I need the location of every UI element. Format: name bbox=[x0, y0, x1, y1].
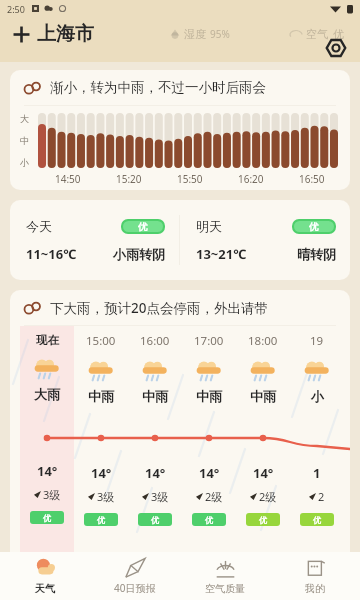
staticText: 15:00 bbox=[86, 333, 116, 349]
button[interactable]: 15:00 bbox=[74, 326, 128, 600]
staticText: 15:50 bbox=[177, 172, 203, 186]
staticText: 14° bbox=[145, 464, 166, 482]
staticText: 40日预报 bbox=[114, 581, 156, 595]
staticText: 优 bbox=[333, 27, 344, 41]
staticText: 优 bbox=[97, 515, 105, 525]
staticText: 优 bbox=[138, 221, 148, 232]
staticText: 16:00 bbox=[140, 333, 170, 349]
button[interactable]: 19 bbox=[290, 326, 344, 600]
staticText: 优 bbox=[259, 515, 267, 525]
staticText: 16:20 bbox=[238, 172, 264, 186]
staticText: 95% bbox=[210, 27, 230, 41]
button[interactable]: 40日预报 bbox=[90, 552, 180, 600]
button[interactable]: 18:00 bbox=[236, 326, 290, 600]
staticText: 15:20 bbox=[116, 172, 142, 186]
staticText: 14° bbox=[199, 464, 220, 482]
staticText: 优 bbox=[313, 515, 321, 525]
staticText: 小 bbox=[311, 388, 324, 404]
staticText: 优 bbox=[205, 515, 213, 525]
staticText: 17:00 bbox=[194, 333, 224, 349]
staticText: 中雨 bbox=[88, 388, 114, 404]
staticText: 明天 bbox=[196, 218, 222, 234]
staticText: 14° bbox=[253, 464, 274, 482]
staticText: 今天 bbox=[26, 218, 52, 234]
staticText: 小 bbox=[20, 157, 29, 168]
staticText: 3级 bbox=[151, 489, 169, 504]
staticText: 中雨 bbox=[142, 388, 168, 404]
staticText: 中雨 bbox=[196, 388, 222, 404]
button[interactable]: 17:00 bbox=[182, 326, 236, 600]
button[interactable]: 16:00 bbox=[128, 326, 182, 600]
button[interactable]: 空气质量 bbox=[180, 552, 270, 600]
staticText: 中雨 bbox=[250, 388, 276, 404]
staticText: 11~16℃ bbox=[26, 245, 77, 263]
staticText: 空气质量 bbox=[205, 582, 245, 595]
staticText: 优 bbox=[309, 221, 319, 232]
staticText: 中 bbox=[20, 135, 29, 146]
staticText: 13~21℃ bbox=[196, 245, 247, 263]
staticText: 晴转阴 bbox=[297, 246, 336, 262]
staticText: 18:00 bbox=[248, 333, 278, 349]
staticText: 湿度 bbox=[184, 27, 206, 41]
button[interactable]: 我的 bbox=[270, 552, 360, 600]
button[interactable]: 现在 bbox=[20, 326, 74, 600]
staticText: 14° bbox=[91, 464, 112, 482]
staticText: 大雨 bbox=[34, 386, 60, 402]
staticText: 大 bbox=[20, 113, 29, 124]
staticText: 下大雨，预计20点会停雨，外出请带 bbox=[50, 299, 268, 317]
staticText: 小雨转阴 bbox=[113, 246, 165, 262]
button[interactable]: 天气 bbox=[0, 552, 90, 600]
staticText: 1 bbox=[313, 464, 321, 482]
button[interactable]: 渐小，转为中雨，不过一小时后雨会 bbox=[10, 70, 350, 190]
staticText: 空气 bbox=[306, 27, 328, 41]
staticText: 现在 bbox=[36, 333, 59, 347]
staticText: 优 bbox=[43, 513, 51, 523]
staticText: 14° bbox=[37, 462, 58, 480]
staticText: 我的 bbox=[305, 582, 325, 595]
staticText: 渐小，转为中雨，不过一小时后雨会 bbox=[50, 79, 266, 96]
staticText: 2级 bbox=[259, 489, 277, 504]
staticText: 2 bbox=[318, 489, 325, 504]
staticText: 上海市 bbox=[37, 22, 94, 46]
staticText: 2级 bbox=[205, 489, 223, 504]
button[interactable]: 明天 bbox=[180, 200, 350, 280]
staticText: 16:50 bbox=[299, 172, 325, 186]
staticText: 3级 bbox=[97, 489, 115, 504]
staticText: 19 bbox=[310, 333, 324, 349]
button[interactable]: 上海市 bbox=[37, 22, 94, 46]
button[interactable]: Add city bbox=[11, 24, 32, 45]
button[interactable]: 今天 bbox=[10, 200, 179, 280]
staticText: 天气 bbox=[35, 582, 55, 595]
staticText: 优 bbox=[151, 515, 159, 525]
staticText: 3级 bbox=[43, 487, 61, 502]
staticText: 2:50 bbox=[7, 3, 25, 15]
button[interactable]: 今天 bbox=[10, 200, 350, 280]
button[interactable]: Settings bbox=[325, 37, 347, 59]
staticText: 14:50 bbox=[55, 172, 81, 186]
